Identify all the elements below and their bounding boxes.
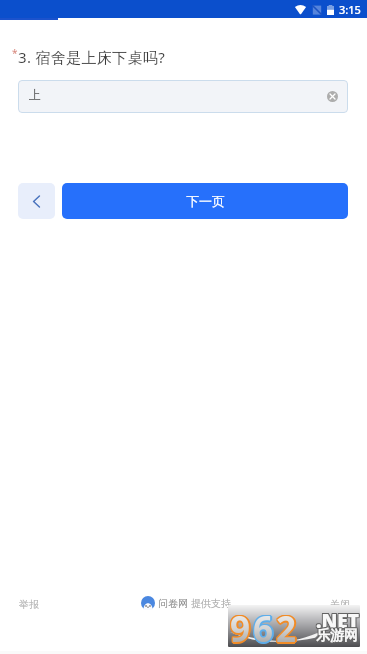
staticText: 乐游网 [317,627,359,645]
staticText: 9 [231,605,252,646]
button[interactable]: 下一页 [62,183,348,219]
staticText: 2 [277,606,298,647]
staticText: 6 [252,605,273,647]
staticText: .NET [317,609,360,635]
staticText: 6 [252,605,273,646]
staticText: .NET [315,607,358,633]
staticText: 9 [232,605,253,647]
staticText: 乐游网 [315,626,357,644]
staticText: 9 [231,606,252,647]
staticText: 乐游网 [316,628,358,646]
staticText: 3:15 [339,2,361,17]
staticText: 2 [276,607,297,647]
staticText: 2 [277,605,298,646]
staticText: .NET [317,607,360,633]
staticText: 2 [278,605,299,647]
staticText: * [12,46,18,60]
staticText: .NET [315,609,358,635]
staticText: 9 [229,606,250,647]
button[interactable]: Clear text [327,91,338,102]
staticText: 6 [254,606,275,647]
staticText: 9 [230,605,251,646]
button[interactable]: Previous page [18,183,55,219]
staticText: 乐游网 [315,628,357,646]
staticText: 下一页 [186,193,225,209]
button[interactable]: 举报 [19,598,39,611]
button[interactable]: 关闭 [330,598,350,611]
staticText: 6 [253,605,274,646]
staticText: 9 [229,605,250,646]
staticText: 3. 宿舍是上床下桌吗? [18,47,166,67]
staticText: 乐游网 [316,627,358,645]
staticText: 提供支持 [191,597,231,610]
staticText: 6 [253,607,274,647]
staticText: 2 [276,605,297,647]
staticText: 9 [229,605,250,647]
staticText: 9 [230,607,251,647]
staticText: .NET [316,607,359,633]
staticText: 乐游网 [315,627,357,645]
staticText: 6 [253,605,274,647]
staticText: 6 [252,606,273,647]
button[interactable]: 问卷网 [141,596,231,610]
staticText: .NET [317,608,360,634]
staticText: 乐游网 [317,626,359,644]
staticText: 9 [230,605,251,647]
staticText: 上 [29,87,41,102]
staticText: .NET [315,608,358,634]
staticText: 2 [275,605,296,647]
staticText: 2 [275,605,296,646]
staticText: 2 [275,606,296,647]
staticText: 2 [276,605,297,646]
button[interactable]: 上 [18,80,348,113]
staticText: 6 [255,605,276,647]
staticText: .NET [316,609,359,635]
staticText: .NET [316,608,359,634]
staticText: 6 [254,605,275,646]
staticText: 乐游网 [316,626,358,644]
staticText: 乐游网 [317,628,359,646]
staticText: 问卷网 [158,597,188,610]
